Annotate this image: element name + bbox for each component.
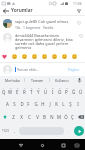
- button[interactable]: Kalp emoji: [0, 52, 9, 61]
- button[interactable]: Emoji: [59, 52, 69, 61]
- staticText: V: [36, 114, 39, 120]
- button[interactable]: Kullanıcı: [50, 76, 74, 84]
- staticText: X: [20, 114, 23, 120]
- staticText: 6: [38, 86, 40, 89]
- button[interactable]: I: [74, 97, 81, 110]
- staticText: 10s 1 begenme Yanitla: [15, 25, 54, 29]
- button[interactable]: ,: [11, 123, 19, 139]
- button[interactable]: deniz4444 Basarilarinizin devaminin gelm…: [0, 33, 85, 51]
- button[interactable]: 6: [35, 84, 42, 97]
- staticText: Yorum ekle...: [17, 67, 39, 72]
- button[interactable]: B: [41, 110, 48, 123]
- button[interactable]: Ana ekran: [37, 140, 47, 150]
- staticText: W: [8, 89, 13, 95]
- button[interactable]: Ö: [62, 110, 69, 123]
- staticText: 2: [10, 86, 12, 89]
- staticText: S: [13, 101, 16, 107]
- button[interactable]: Begen: [78, 33, 84, 39]
- button[interactable]: A: [4, 97, 11, 110]
- staticText: 1: [3, 86, 5, 89]
- button[interactable]: D: [18, 97, 25, 110]
- staticText: Paylas: [68, 67, 80, 72]
- button[interactable]: Klavyeyi gizle: [72, 140, 82, 150]
- staticText: Ş: [69, 101, 72, 107]
- staticText: N: [50, 114, 54, 120]
- button[interactable]: 3: [14, 84, 21, 97]
- button[interactable]: Z: [9, 110, 17, 123]
- button[interactable]: 1: [1, 84, 7, 97]
- button[interactable]: M: [55, 110, 62, 123]
- button[interactable]: Geri: [16, 140, 26, 150]
- button[interactable]: G: [32, 97, 39, 110]
- button[interactable]: F: [25, 97, 32, 110]
- button[interactable]: C: [25, 110, 33, 123]
- button[interactable]: S: [11, 97, 18, 110]
- button[interactable]: Ğ: [70, 84, 77, 97]
- button[interactable]: Geri: [0, 6, 11, 15]
- staticText: R: [23, 89, 26, 95]
- button[interactable]: Emoji: [29, 52, 39, 61]
- staticText: .: [67, 128, 69, 134]
- button[interactable]: sajut.gule85 Cok guzel olmus: [0, 19, 85, 29]
- staticText: B: [43, 114, 46, 120]
- staticText: D: [20, 101, 24, 107]
- staticText: Ö: [64, 114, 68, 120]
- staticText: Z: [12, 114, 15, 120]
- button[interactable]: Emoji: [49, 52, 59, 61]
- staticText: ?123: [2, 129, 9, 133]
- staticText: M: [57, 114, 61, 120]
- button[interactable]: 2: [7, 84, 14, 97]
- staticText: Ü: [79, 89, 83, 95]
- button[interactable]: Sil: [76, 110, 85, 123]
- button[interactable]: Emoji: [9, 52, 19, 61]
- staticText: 11:06: [73, 1, 82, 6]
- button[interactable]: N: [48, 110, 55, 123]
- button[interactable]: Begen: [75, 19, 82, 26]
- staticText: H: [41, 101, 45, 107]
- button[interactable]: 7: [42, 84, 49, 97]
- button[interactable]: Tamam: [25, 76, 49, 84]
- button[interactable]: 8: [49, 84, 56, 97]
- button[interactable]: Ş: [67, 97, 74, 110]
- staticText: Ğ: [72, 89, 76, 95]
- staticText: Q: [2, 89, 6, 95]
- button[interactable]: L: [60, 97, 67, 110]
- staticText: Y: [37, 89, 40, 95]
- button[interactable]: J: [46, 97, 53, 110]
- button[interactable]: Bosluk: [19, 127, 64, 135]
- button[interactable]: Sesle yaz: [74, 76, 85, 84]
- button[interactable]: Emoji: [19, 52, 29, 61]
- button[interactable]: 4: [21, 84, 28, 97]
- button[interactable]: Filtrele: [73, 6, 85, 15]
- button[interactable]: Shift: [0, 110, 9, 123]
- staticText: I: [77, 101, 79, 107]
- button[interactable]: Merhaba: [0, 76, 24, 84]
- staticText: 8: [52, 86, 54, 89]
- staticText: E: [16, 89, 19, 95]
- button[interactable]: Emoji: [39, 52, 49, 61]
- staticText: ,: [14, 128, 16, 134]
- button[interactable]: V: [33, 110, 41, 123]
- staticText: G: [34, 101, 38, 107]
- button[interactable]: Gonder: [74, 126, 84, 136]
- staticText: Tamam: [31, 78, 44, 83]
- button[interactable]: ?123: [0, 123, 11, 139]
- button[interactable]: Ç: [69, 110, 76, 123]
- button[interactable]: Son uygulamalar: [58, 140, 68, 150]
- staticText: 0: [66, 86, 68, 89]
- button[interactable]: H: [39, 97, 46, 110]
- button[interactable]: 9: [56, 84, 63, 97]
- staticText: T: [30, 89, 33, 95]
- button[interactable]: K: [53, 97, 60, 110]
- button[interactable]: Emoji: [69, 52, 79, 61]
- staticText: Yorumlar: [11, 7, 33, 14]
- staticText: 7: [45, 86, 47, 89]
- staticText: I: [52, 89, 54, 95]
- button[interactable]: Ü: [77, 84, 84, 97]
- button[interactable]: 5: [28, 84, 35, 97]
- staticText: F: [27, 101, 30, 107]
- button[interactable]: X: [17, 110, 25, 123]
- button[interactable]: Paylas: [66, 66, 82, 73]
- button[interactable]: 0: [63, 84, 70, 97]
